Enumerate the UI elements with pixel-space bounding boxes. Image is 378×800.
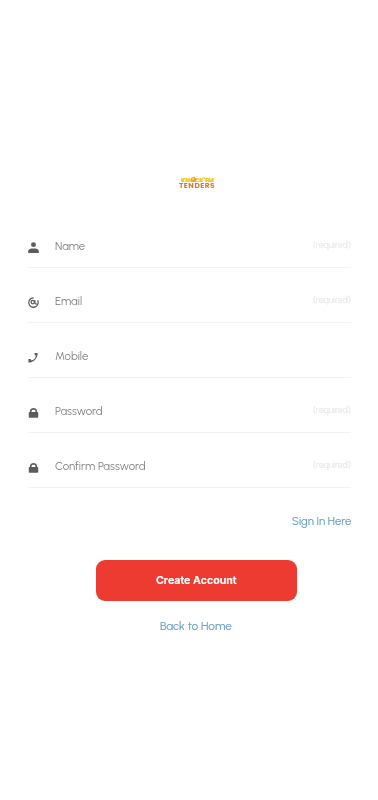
button[interactable]: Confirm Password	[28, 440, 351, 487]
button[interactable]: Mobile	[28, 330, 351, 377]
other: Mobile	[28, 352, 39, 363]
staticText: (required)	[313, 405, 351, 416]
staticText: Email	[55, 294, 83, 308]
staticText: Back to Home	[160, 619, 232, 633]
staticText: (required)	[313, 295, 351, 306]
button[interactable]: Sign In Here	[286, 508, 358, 534]
staticText: TENDERS	[179, 180, 216, 189]
other: Email	[28, 297, 39, 308]
other: Confirm Password	[28, 462, 39, 473]
other: Password	[28, 407, 39, 418]
other: Name	[28, 242, 39, 253]
button[interactable]: Email	[28, 275, 351, 322]
button[interactable]: Password	[28, 385, 351, 432]
button[interactable]: Name	[28, 220, 351, 267]
staticText: Create Account	[156, 574, 237, 587]
staticText: Sign In Here	[292, 514, 352, 528]
button[interactable]: Back to Home	[152, 613, 240, 639]
button[interactable]: Create Account	[96, 560, 297, 601]
staticText: Mobile	[55, 349, 89, 363]
staticText: Name	[55, 239, 86, 253]
staticText: KNOCK'EM	[181, 176, 214, 182]
staticText: (required)	[313, 460, 351, 471]
staticText: Password	[55, 404, 103, 418]
staticText: Confirm Password	[55, 459, 146, 473]
staticText: (required)	[313, 240, 351, 251]
